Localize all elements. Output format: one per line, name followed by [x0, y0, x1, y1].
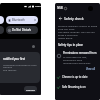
staticText: Chrome regularly checks to make sure you…	[58, 24, 98, 39]
staticText: To help keep you safe, permissions were …	[63, 56, 98, 65]
staticText: 100%	[35, 5, 41, 8]
button[interactable]: Dismiss	[24, 86, 37, 92]
staticText: notification promoted to from Outlook an…	[3, 63, 37, 72]
staticText: Safety check	[64, 16, 84, 20]
staticText: Safe Browsing is on	[62, 85, 86, 89]
button[interactable]: Permissions removed from unused sites	[55, 51, 100, 65]
staticText: View all	[86, 67, 96, 70]
button[interactable]: View all	[85, 66, 97, 71]
button[interactable]: Safe Browsing is on	[55, 82, 100, 92]
staticText: Do Not Disturb	[12, 28, 32, 32]
staticText: Safety tips in place	[58, 43, 83, 47]
staticText: Dismiss	[26, 88, 35, 91]
staticText: Chrome is up to date	[62, 75, 88, 79]
staticText: Bluetooth	[12, 18, 25, 22]
staticText: Permissions removed from unused sites	[63, 51, 98, 55]
button[interactable]: Do Not Disturb	[6, 26, 38, 34]
button[interactable]: Back	[57, 15, 63, 21]
staticText: 9:58	[57, 6, 63, 10]
button[interactable]: Bluetooth	[6, 16, 38, 24]
staticText: notified you first notifications	[3, 57, 37, 61]
button[interactable]: Chrome is up to date	[55, 72, 100, 82]
